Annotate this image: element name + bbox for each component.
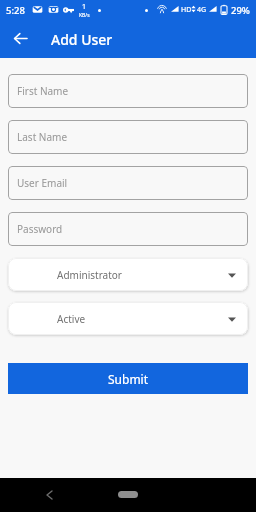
- button[interactable]: Submit: [8, 363, 248, 394]
- staticText: Last Name: [17, 130, 68, 144]
- button[interactable]: Last Name: [8, 120, 248, 154]
- button[interactable]: Active: [8, 302, 248, 335]
- button[interactable]: Back: [8, 26, 32, 50]
- staticText: User Email: [17, 176, 68, 190]
- staticText: Password: [17, 222, 63, 236]
- button[interactable]: User Email: [8, 166, 248, 200]
- staticText: First Name: [17, 84, 69, 98]
- button[interactable]: Home: [118, 491, 138, 498]
- staticText: Administrator: [57, 268, 122, 282]
- staticText: HD: [181, 5, 192, 15]
- staticText: KB/s: [79, 12, 90, 19]
- staticText: Active: [57, 312, 86, 326]
- staticText: Submit: [108, 371, 149, 387]
- button[interactable]: Administrator: [8, 258, 248, 291]
- staticText: 4G: [197, 5, 207, 15]
- staticText: 1: [82, 2, 87, 12]
- staticText: Add User: [51, 30, 113, 49]
- button[interactable]: Back: [39, 485, 59, 505]
- button[interactable]: First Name: [8, 74, 248, 108]
- staticText: 5:28: [6, 4, 25, 17]
- button[interactable]: Password: [8, 212, 248, 246]
- staticText: 29%: [231, 4, 250, 17]
